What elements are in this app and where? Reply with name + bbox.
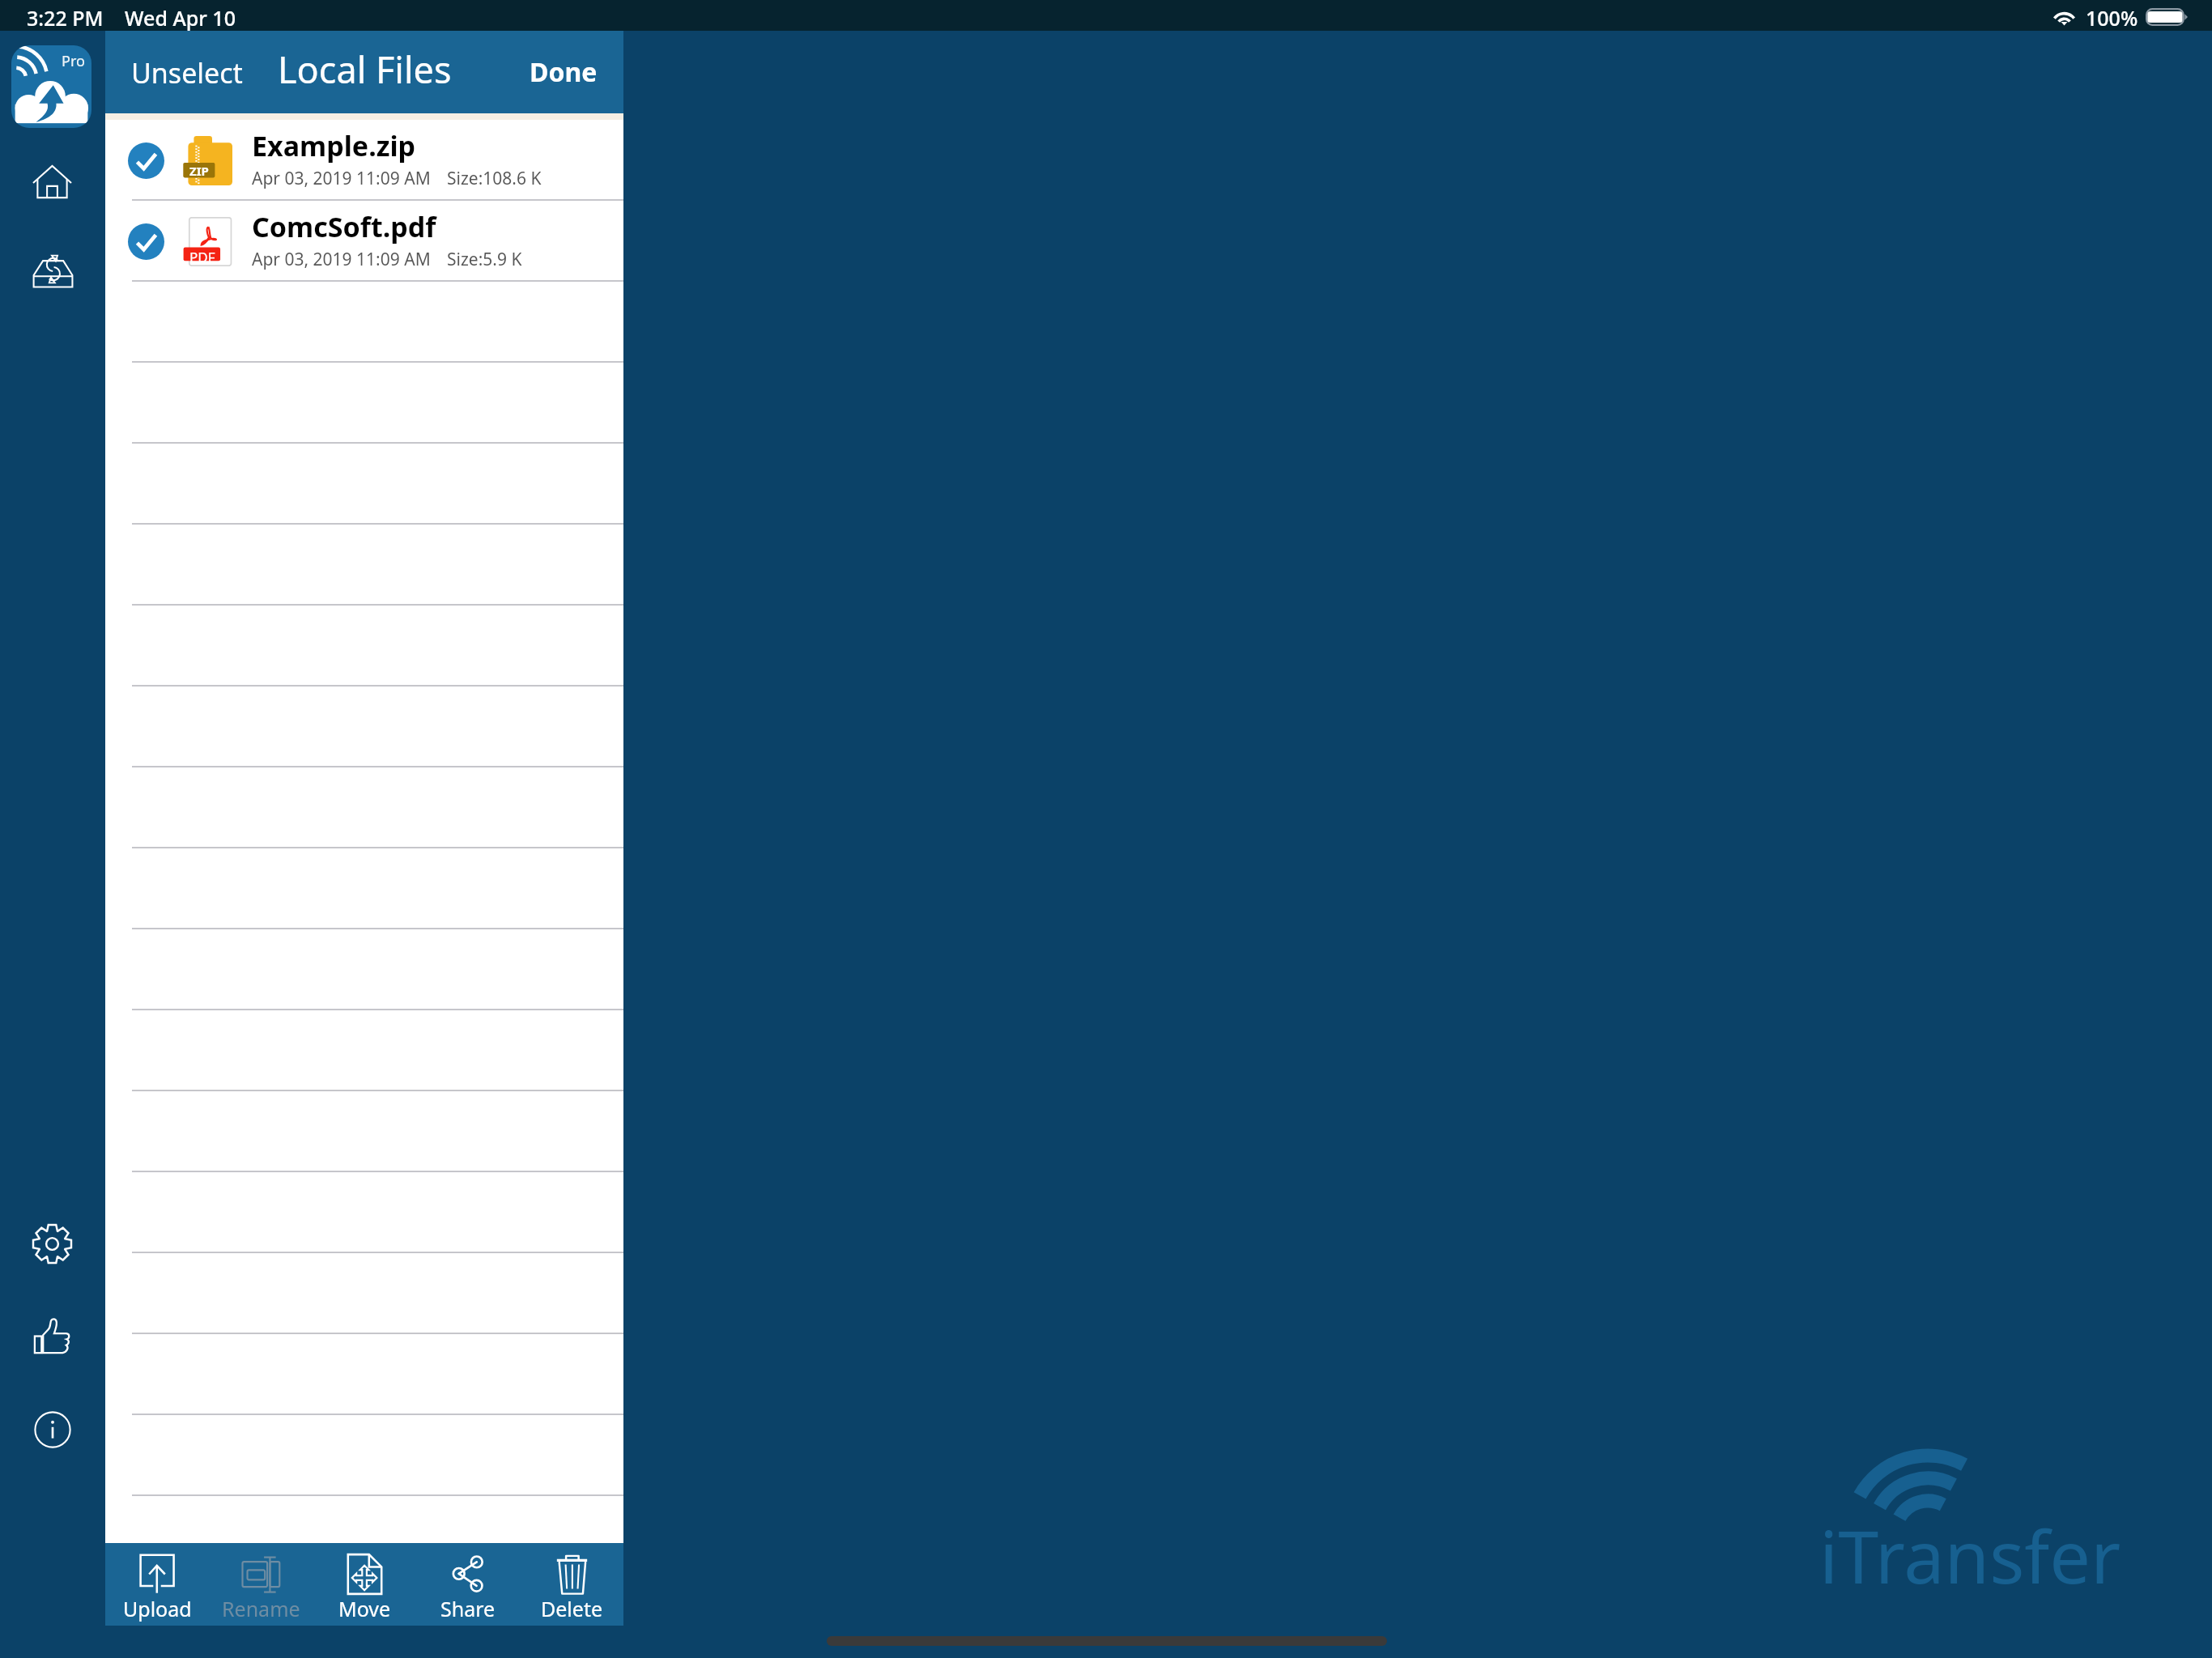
- staticText: Share: [440, 1595, 496, 1622]
- staticText: ComcSoft.pdf: [252, 208, 436, 245]
- staticText: Size:108.6 K: [447, 167, 542, 190]
- button[interactable]: Home: [14, 143, 90, 219]
- staticText: Unselect: [131, 54, 243, 91]
- button[interactable]: Info: [15, 1392, 91, 1468]
- button[interactable]: Unselect: [105, 41, 256, 104]
- staticText: Apr 03, 2019 11:09 AM: [252, 248, 431, 271]
- staticText: Wed Apr 10: [125, 4, 236, 32]
- staticText: Rename: [222, 1595, 300, 1622]
- button[interactable]: Move: [313, 1543, 416, 1626]
- staticText: 3:22 PM: [27, 4, 104, 32]
- button[interactable]: ZIP: [105, 120, 623, 201]
- button[interactable]: iTransfer Pro: [11, 45, 91, 128]
- staticText: Example.zip: [252, 127, 416, 164]
- staticText: Upload: [123, 1595, 192, 1622]
- staticText: Done: [530, 54, 598, 90]
- button[interactable]: Share: [416, 1543, 520, 1626]
- staticText: Apr 03, 2019 11:09 AM: [252, 167, 431, 190]
- button[interactable]: Rate us: [14, 1298, 90, 1374]
- staticText: 100%: [2086, 4, 2138, 32]
- button[interactable]: Delete: [520, 1543, 623, 1626]
- button[interactable]: Done: [517, 41, 623, 103]
- button[interactable]: Transfers: [15, 229, 91, 305]
- staticText: Move: [338, 1595, 391, 1622]
- staticText: Local Files: [278, 45, 452, 94]
- button[interactable]: Rename: [209, 1543, 313, 1626]
- button[interactable]: Upload: [105, 1543, 209, 1626]
- staticText: Delete: [541, 1595, 603, 1622]
- button[interactable]: Settings: [14, 1205, 90, 1282]
- button[interactable]: PDF: [105, 201, 623, 282]
- staticText: Pro: [62, 51, 85, 71]
- staticText: ZIP: [189, 163, 209, 178]
- staticText: iTransfer: [1819, 1506, 2121, 1605]
- staticText: Size:5.9 K: [447, 248, 522, 271]
- staticText: PDF: [189, 248, 215, 261]
